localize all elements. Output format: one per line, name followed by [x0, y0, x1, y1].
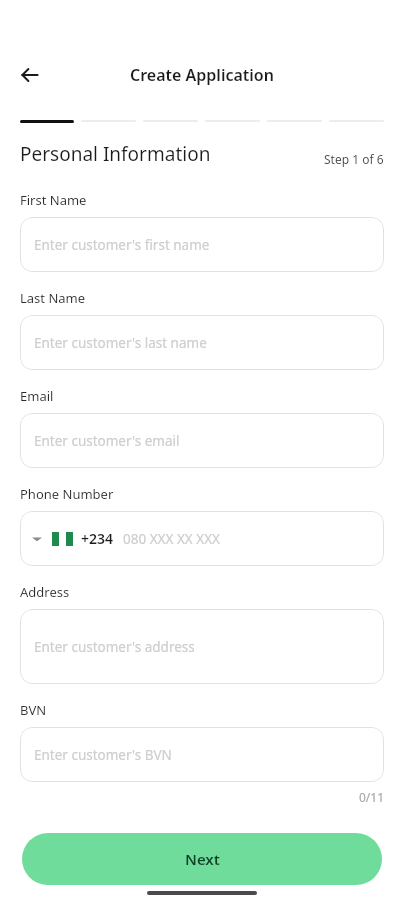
button[interactable]: Back	[10, 55, 50, 95]
staticText: Next	[185, 849, 220, 869]
staticText: 080 XXX XX XXX	[123, 530, 220, 548]
button[interactable]: +234	[20, 511, 384, 566]
staticText: +234	[81, 529, 114, 548]
button[interactable]: Enter customer's BVN	[20, 727, 384, 782]
staticText: Enter customer's BVN	[34, 746, 172, 764]
button[interactable]: Enter customer's address	[20, 609, 384, 684]
staticText: Enter customer's email	[34, 432, 180, 450]
staticText: First Name	[20, 191, 87, 209]
staticText: 0/11	[20, 789, 384, 805]
staticText: Enter customer's first name	[34, 236, 210, 254]
staticText: Step 1 of 6	[324, 151, 384, 167]
button[interactable]: Enter customer's first name	[20, 217, 384, 272]
button[interactable]: Enter customer's last name	[20, 315, 384, 370]
staticText: Personal Information	[20, 141, 211, 167]
staticText: Enter customer's last name	[34, 334, 207, 352]
staticText: Enter customer's address	[34, 638, 195, 656]
staticText: BVN	[20, 701, 47, 719]
staticText: Last Name	[20, 289, 86, 307]
button[interactable]: Enter customer's email	[20, 413, 384, 468]
button[interactable]: Next	[22, 833, 382, 885]
staticText: Email	[20, 387, 54, 405]
staticText: Create Application	[130, 64, 274, 86]
staticText: Address	[20, 583, 70, 601]
staticText: Phone Number	[20, 485, 114, 503]
